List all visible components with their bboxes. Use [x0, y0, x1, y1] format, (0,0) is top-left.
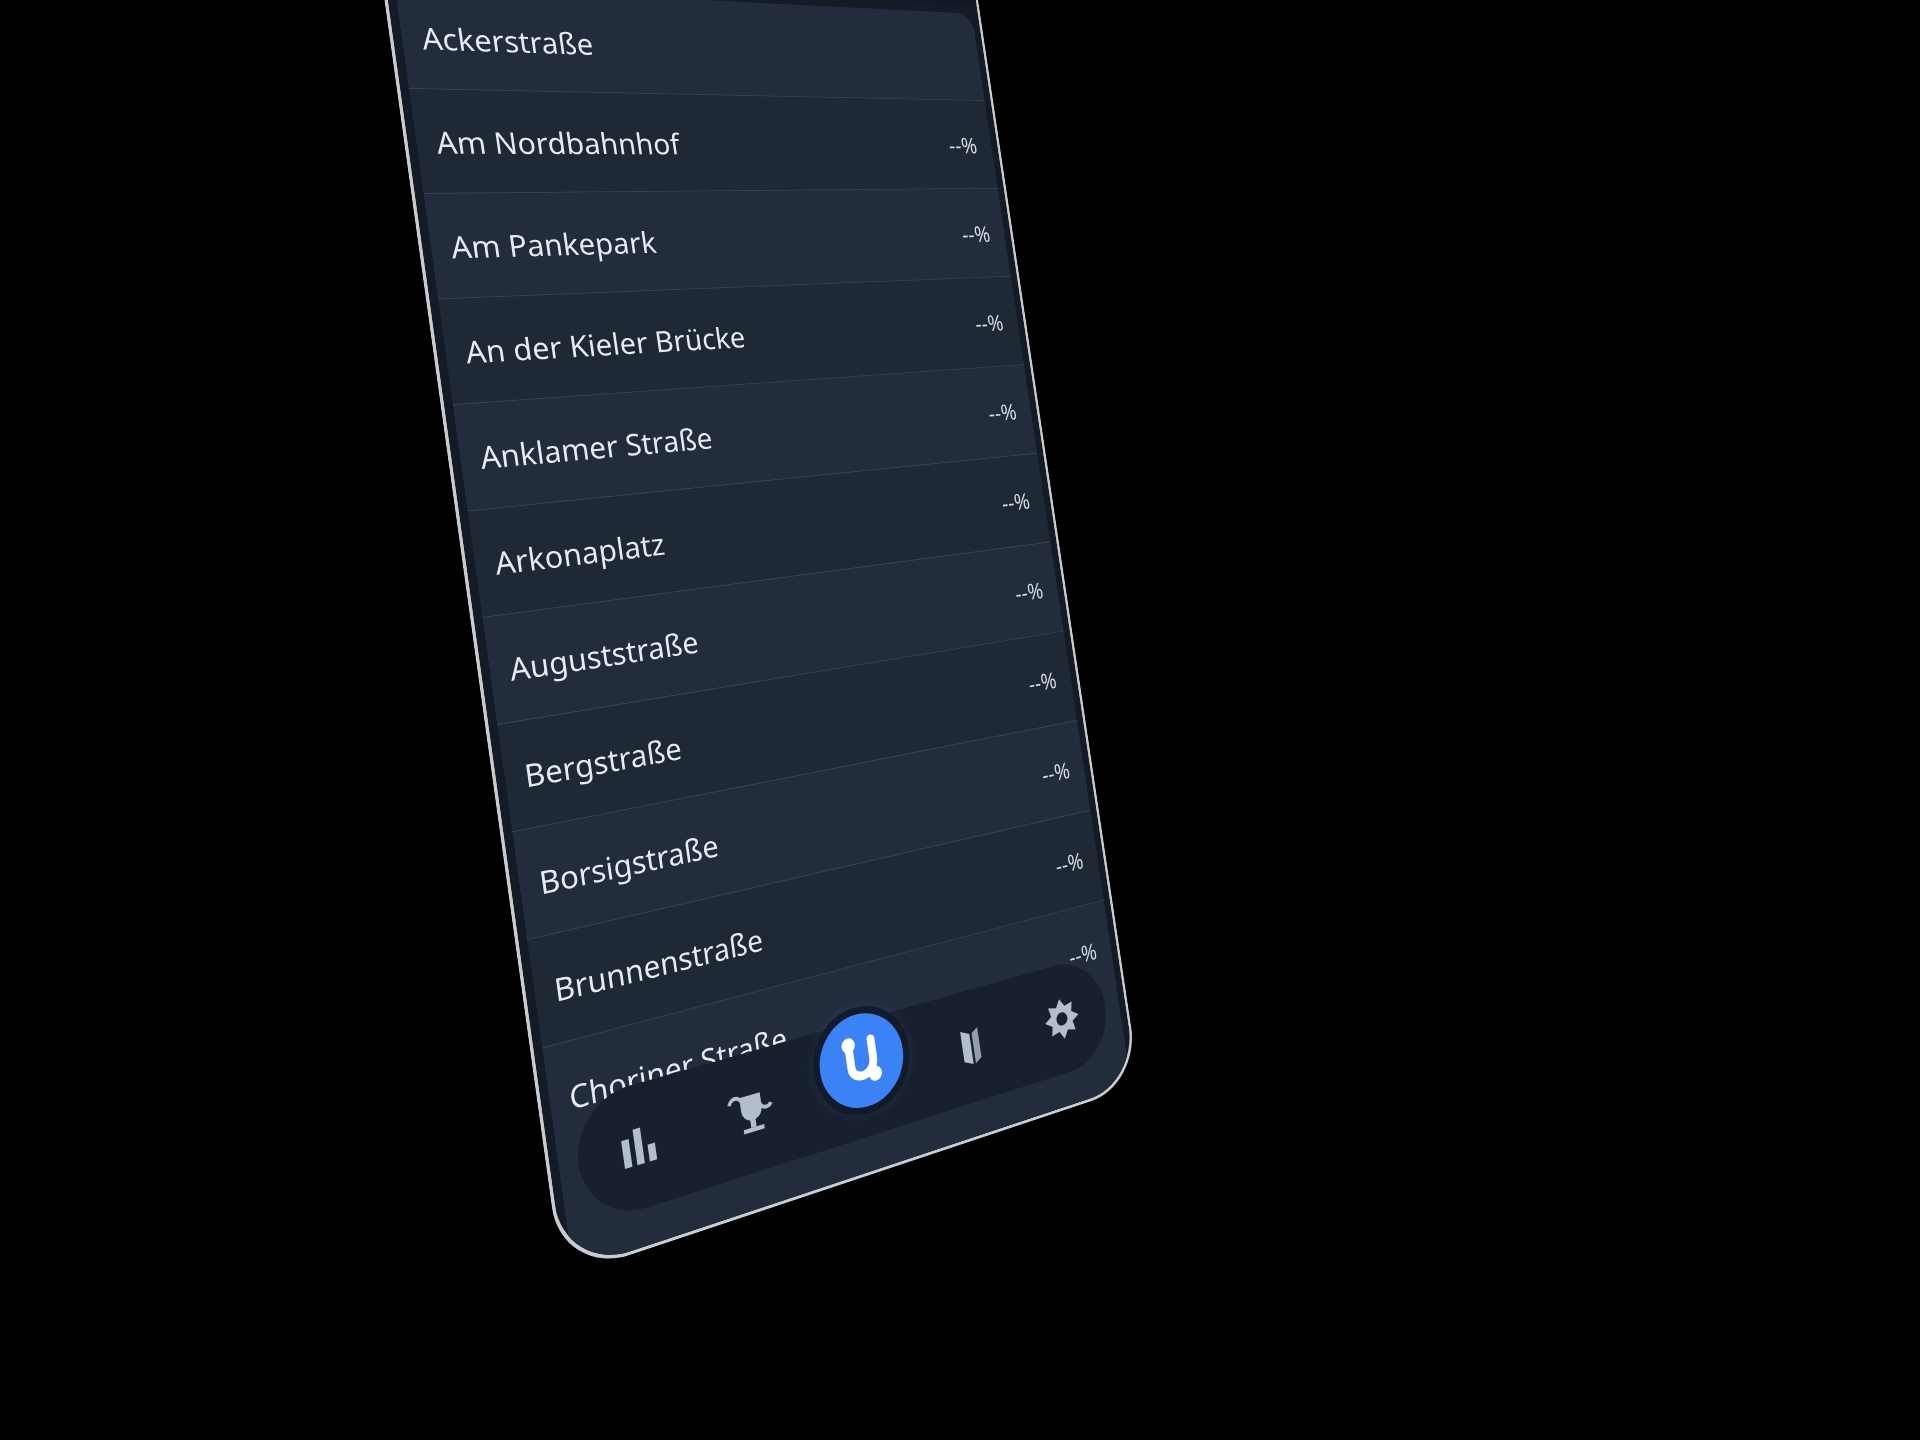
staticText: --%: [986, 396, 1019, 428]
staticText: --%: [1067, 934, 1099, 972]
button[interactable]: Borsigstraße: [512, 721, 1090, 939]
staticText: Auguststraße: [507, 621, 701, 690]
staticText: Choriner Straße: [566, 1017, 789, 1119]
staticText: --%: [973, 307, 1006, 338]
staticText: Bergstraße: [521, 727, 684, 796]
button[interactable]: Achievements: [687, 1038, 813, 1189]
button[interactable]: Record route: [813, 1003, 909, 1119]
button[interactable]: Am Nordbahnhof: [409, 89, 998, 193]
button[interactable]: Bergstraße: [497, 632, 1077, 831]
staticText: --%: [1053, 844, 1086, 881]
button[interactable]: Map: [914, 979, 1024, 1117]
staticText: Ackerstraße: [419, 17, 595, 63]
staticText: Am Pankepark: [448, 222, 659, 267]
button[interactable]: An der Kieler Brücke: [438, 277, 1024, 404]
button[interactable]: Statistics: [570, 1069, 704, 1227]
button[interactable]: Arkonaplatz: [468, 454, 1050, 617]
button[interactable]: Am Pankepark: [424, 189, 1011, 298]
staticText: --%: [1026, 664, 1059, 699]
staticText: --%: [1013, 574, 1045, 608]
staticText: Arkonaplatz: [492, 523, 668, 583]
staticText: --%: [1000, 485, 1032, 518]
button[interactable]: Auguststraße: [482, 542, 1064, 724]
staticText: An der Kieler Brücke: [462, 317, 748, 372]
staticText: --%: [1040, 754, 1072, 790]
staticText: Brunnenstraße: [551, 918, 766, 1011]
staticText: --%: [946, 130, 979, 159]
staticText: Am Nordbahnhof: [433, 121, 683, 162]
button[interactable]: Choriner Straße: [542, 901, 1117, 1156]
button[interactable]: Settings: [1008, 954, 1113, 1087]
button[interactable]: Anklamer Straße: [453, 365, 1037, 510]
button[interactable]: Brunnenstraße: [527, 811, 1104, 1047]
staticText: Borsigstraße: [536, 824, 721, 903]
button[interactable]: Ackerstraße: [394, 0, 985, 100]
staticText: --%: [960, 218, 992, 249]
staticText: Anklamer Straße: [477, 417, 715, 477]
